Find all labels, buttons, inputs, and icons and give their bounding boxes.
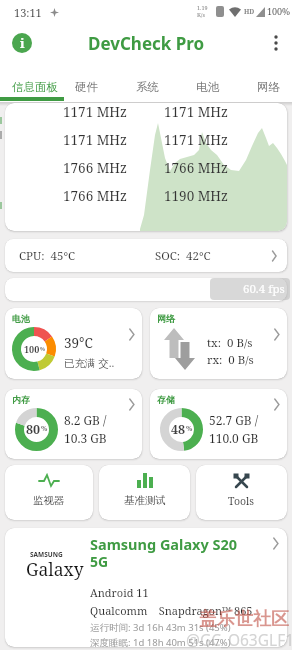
button[interactable]: 电池 <box>185 72 229 102</box>
staticText: % <box>41 424 48 434</box>
staticText: 基准测试 <box>124 494 166 507</box>
button[interactable]: 内存 <box>5 389 142 459</box>
staticText: 100 <box>24 343 40 355</box>
staticText: 系统 <box>136 80 159 94</box>
staticText: 1766 MHz <box>63 159 127 176</box>
staticText: 1190 MHz <box>164 187 228 204</box>
staticText: Galaxy <box>26 557 84 581</box>
staticText: 80 <box>26 421 41 438</box>
staticText: 网络 <box>257 80 280 94</box>
staticText: 110.0 GB <box>209 430 259 446</box>
staticText: 监视器 <box>33 494 65 507</box>
staticText: % <box>40 345 45 352</box>
staticText: 13:11 <box>14 5 42 20</box>
staticText: 1766 MHz <box>164 159 228 176</box>
staticText: HD <box>244 7 255 16</box>
staticText: 信息面板 <box>12 80 58 94</box>
staticText: 存储 <box>157 394 175 405</box>
staticText: Qualcomm Snapdragon™ 865 <box>90 603 253 618</box>
button[interactable]: CPU: 45°C <box>5 239 287 272</box>
button[interactable]: 网络 <box>246 72 290 102</box>
staticText: @GC_O63GLF1S <box>186 629 292 650</box>
staticText: 内存 <box>12 394 30 405</box>
staticText: 1.19 <box>197 4 208 11</box>
staticText: Android 11 <box>90 585 149 600</box>
staticText: 48 <box>171 421 186 438</box>
staticText: 电池 <box>196 80 219 94</box>
staticText: 已充满 交.. <box>64 356 115 370</box>
staticText: SAMSUNG <box>30 550 63 559</box>
staticText: 1171 MHz <box>164 103 228 120</box>
staticText: Samsung Galaxy S20 <box>90 534 238 554</box>
staticText: 1171 MHz <box>63 131 127 148</box>
button[interactable]: Tools <box>196 465 287 520</box>
staticText: 60.4 fps <box>243 281 285 297</box>
button[interactable]: 网络 <box>150 308 287 379</box>
staticText: CPU: 45°C <box>19 248 76 264</box>
staticText: 1171 MHz <box>63 103 127 120</box>
staticText: 电池 <box>12 313 30 324</box>
button[interactable]: 电池 <box>5 308 142 379</box>
button[interactable]: 监视器 <box>5 465 93 520</box>
staticText: SOC: 42°C <box>155 248 211 264</box>
button[interactable]: 基准测试 <box>99 465 190 520</box>
staticText: 52.7 GB / <box>209 412 259 428</box>
staticText: 100% <box>267 5 291 17</box>
staticText: 网络 <box>157 313 175 324</box>
staticText: 运行时间: 3d 16h 43m 31s (45%) <box>90 621 231 634</box>
button[interactable] <box>272 35 280 51</box>
button[interactable]: 硬件 <box>64 72 108 102</box>
staticText: 深度睡眠: 1d 18h 40m 51s (47%) <box>90 636 231 647</box>
staticText: 8.2 GB / <box>64 412 107 428</box>
staticText: 硬件 <box>75 80 98 94</box>
staticText: 39°C <box>64 334 93 352</box>
staticText: tx: 0 B/s <box>207 335 253 351</box>
staticText: i <box>20 34 25 52</box>
staticText: 10.3 GB <box>64 430 107 446</box>
button[interactable]: SAMSUNG <box>5 528 287 647</box>
staticText: 1766 MHz <box>63 187 127 204</box>
button[interactable]: 存储 <box>150 389 287 459</box>
button[interactable]: i <box>12 33 32 53</box>
staticText: DevCheck Pro <box>88 32 205 55</box>
button[interactable]: 信息面板 <box>0 72 70 102</box>
staticText: rx: 0 B/s <box>207 352 254 368</box>
staticText: K/s <box>197 11 205 18</box>
staticText: 盖乐世社区 <box>199 608 289 631</box>
staticText: 5G <box>90 552 109 571</box>
staticText: % <box>186 424 193 434</box>
staticText: Tools <box>228 494 255 508</box>
staticText: 1171 MHz <box>164 131 228 148</box>
button[interactable]: 系统 <box>125 72 169 102</box>
